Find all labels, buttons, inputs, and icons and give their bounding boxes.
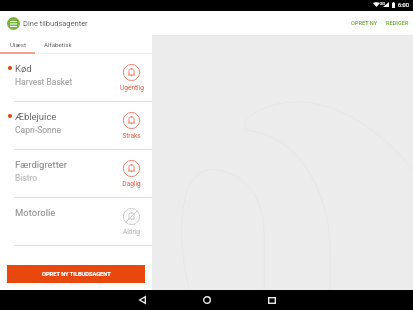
staticText: Bistro [15,173,38,183]
staticText: Alfabetisk [44,41,72,48]
staticText: 3G [380,1,386,6]
staticText: Daglig [122,180,141,188]
staticText: Ulæst [10,41,26,48]
staticText: Straks [122,132,141,140]
button[interactable]: Motorolie [0,198,152,246]
staticText: Kød [15,63,32,74]
button[interactable]: Kød [0,54,152,102]
staticText: Ugentlig [120,84,144,92]
staticText: Harvest Basket [15,77,73,87]
button[interactable]: Home [197,290,217,310]
button[interactable]: Recent apps [262,290,282,310]
staticText: Æblejuice [15,111,57,122]
button[interactable]: Back [132,290,152,310]
staticText: 6:00 [398,2,409,9]
staticText: Aldrig [123,228,140,236]
staticText: OPRET NY TILBUDSAGENT [42,271,111,278]
staticText: REDIGER [386,20,409,27]
button[interactable]: OPRET NY [347,15,382,32]
staticText: OPRET NY [351,20,378,27]
button[interactable]: REDIGER [382,15,413,32]
staticText: Færdigretter [15,159,68,170]
button[interactable]: Færdigretter [0,150,152,198]
button[interactable]: Æblejuice [0,102,152,150]
staticText: Motorolie [15,207,56,218]
button[interactable]: Navigation drawer [7,17,20,30]
button[interactable]: Alfabetisk [35,35,81,54]
staticText: Dine tilbudsagenter [23,19,88,28]
button[interactable]: OPRET NY TILBUDSAGENT [7,265,145,283]
staticText: Capri-Sonne [15,125,62,135]
button[interactable]: Ulæst [0,35,35,54]
